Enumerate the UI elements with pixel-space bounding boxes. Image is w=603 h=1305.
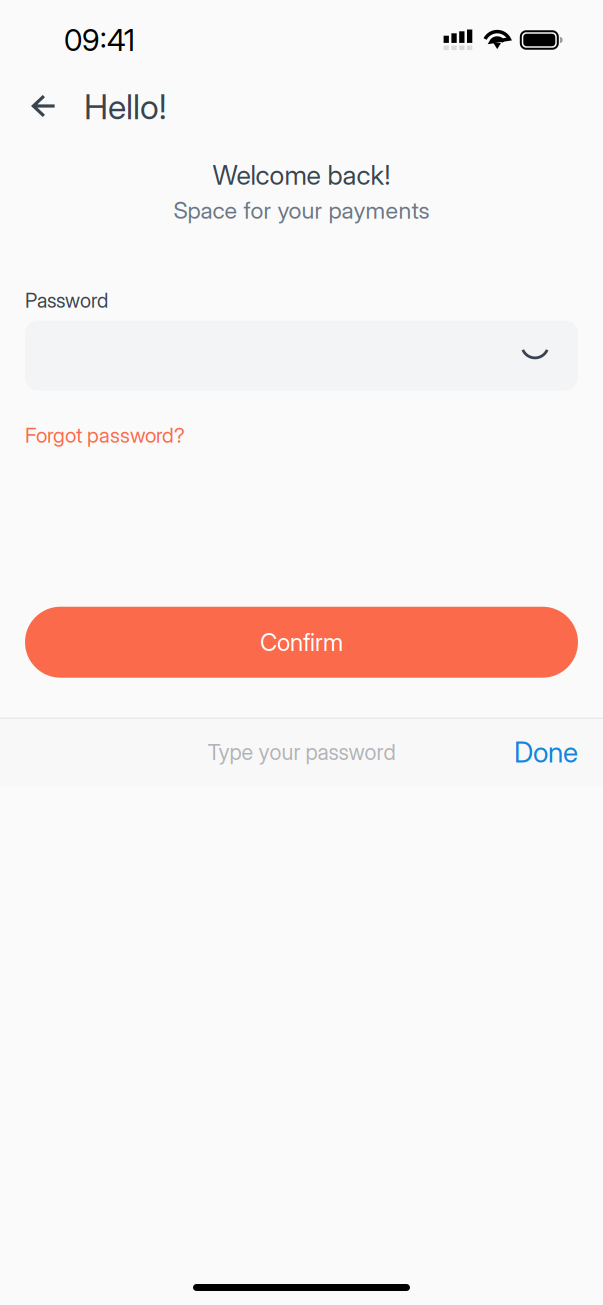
staticText: Hello! — [84, 86, 166, 127]
button[interactable]: Back — [12, 78, 68, 124]
staticText: 09:41 — [64, 22, 135, 58]
staticText: Type your password — [207, 739, 395, 765]
button[interactable]: Forgot password? — [25, 423, 185, 448]
button[interactable]: Show password — [510, 331, 560, 381]
staticText: Confirm — [260, 628, 343, 657]
button[interactable]: Confirm — [25, 607, 578, 678]
staticText: Done — [514, 735, 578, 769]
staticText: Forgot password? — [25, 423, 185, 448]
button[interactable]: Done — [489, 721, 603, 783]
staticText: Password — [25, 288, 108, 313]
staticText: Welcome back! — [212, 159, 390, 191]
staticText: Space for your payments — [173, 196, 429, 224]
